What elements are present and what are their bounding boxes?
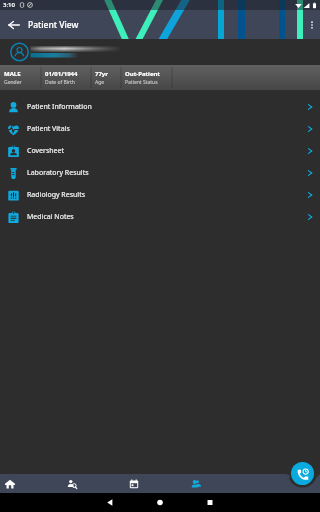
button[interactable]: Coversheet — [0, 140, 320, 162]
button[interactable]: More options — [304, 10, 320, 39]
staticText: 3:10 — [3, 1, 15, 9]
staticText: Patient Information — [27, 102, 92, 112]
staticText: Age — [95, 79, 105, 86]
staticText: Patient Vitals — [27, 124, 70, 134]
staticText: 77yr — [95, 70, 108, 78]
staticText: Radiology Results — [27, 190, 86, 200]
staticText: Patient Status — [125, 79, 158, 86]
button[interactable]: Patients — [176, 474, 216, 493]
staticText: Laboratory Results — [27, 168, 89, 178]
button[interactable]: Radiology Results — [0, 184, 320, 206]
staticText: Date of Birth — [45, 79, 75, 86]
button[interactable]: Schedule — [114, 474, 154, 493]
button[interactable]: Call patient — [291, 462, 314, 485]
button[interactable]: Patient Vitals — [0, 118, 320, 140]
button[interactable]: Home — [0, 474, 30, 493]
staticText: Out-Patient — [125, 70, 160, 78]
button[interactable]: Laboratory Results — [0, 162, 320, 184]
staticText: MALE — [4, 70, 21, 78]
staticText: Gender — [4, 79, 22, 86]
button[interactable]: Find patient — [52, 474, 92, 493]
button[interactable]: Patient Information — [0, 96, 320, 118]
button[interactable]: Back — [0, 11, 28, 39]
staticText: 01/01/1944 — [45, 70, 78, 78]
staticText: Coversheet — [27, 146, 65, 156]
staticText: Patient View — [28, 19, 79, 31]
staticText: Medical Notes — [27, 212, 74, 222]
button[interactable]: Medical Notes — [0, 206, 320, 228]
